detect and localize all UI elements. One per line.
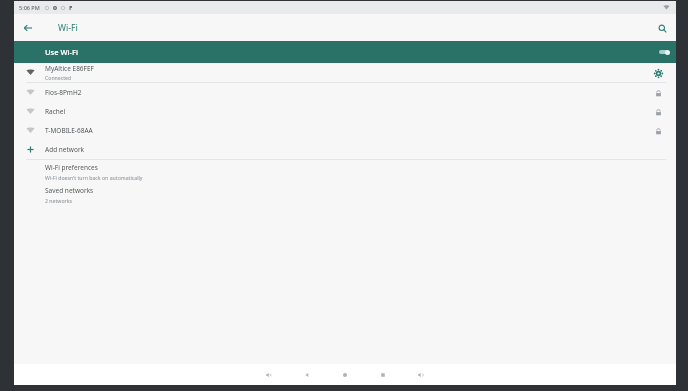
- staticText: 2 networks: [45, 197, 72, 204]
- staticText: T-MOBILE-68AA: [45, 126, 93, 135]
- staticText: MyAltice E86FEF: [45, 64, 94, 73]
- button[interactable]: Wi-Fi preferences: [14, 160, 676, 183]
- button[interactable]: Navigate up: [17, 17, 39, 39]
- button[interactable]: Home: [336, 366, 354, 384]
- button[interactable]: Saved networks: [14, 183, 676, 206]
- button[interactable]: Recent apps: [374, 366, 392, 384]
- staticText: Add network: [45, 145, 85, 154]
- staticText: Wi-Fi: [58, 22, 78, 34]
- staticText: Fios-8PmH2: [45, 88, 82, 97]
- button[interactable]: T-MOBILE-68AA: [14, 121, 676, 140]
- button[interactable]: Rachel: [14, 102, 676, 121]
- staticText: Wi-Fi preferences: [45, 163, 98, 172]
- staticText: Rachel: [45, 107, 66, 116]
- staticText: Use Wi-Fi: [45, 47, 78, 57]
- button[interactable]: Use Wi-Fi toggle: [656, 45, 670, 59]
- staticText: Connected: [45, 74, 72, 81]
- staticText: 5:06 PM: [19, 4, 40, 11]
- button[interactable]: Volume down: [260, 366, 278, 384]
- button[interactable]: Volume up: [412, 366, 430, 384]
- button[interactable]: Search: [651, 17, 673, 39]
- staticText: Wi-Fi doesn't turn back on automatically: [45, 174, 143, 181]
- button[interactable]: Add network: [14, 140, 676, 159]
- button[interactable]: Use Wi-Fi: [14, 41, 676, 63]
- staticText: Saved networks: [45, 186, 94, 195]
- button[interactable]: Network settings: [650, 65, 666, 81]
- button[interactable]: Fios-8PmH2: [14, 83, 676, 102]
- button[interactable]: MyAltice E86FEF: [14, 63, 676, 82]
- button[interactable]: Back: [298, 366, 316, 384]
